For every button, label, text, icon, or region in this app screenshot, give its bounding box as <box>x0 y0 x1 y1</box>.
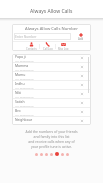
button[interactable]: Delete <box>80 119 84 123</box>
button[interactable]: Neighbour <box>12 117 91 125</box>
staticText: Bro <box>15 108 21 113</box>
button[interactable]: Mamma <box>12 63 91 71</box>
button[interactable]: Msg Log <box>56 42 71 51</box>
staticText: Always Allow Calls <box>30 8 73 15</box>
staticText: Mamu <box>15 72 26 77</box>
button[interactable]: Delete <box>80 56 84 60</box>
staticText: +91 9876543210 <box>15 113 34 116</box>
button[interactable]: Delete <box>80 83 84 87</box>
staticText: Indhu <box>15 81 25 86</box>
staticText: Mamma <box>15 63 29 68</box>
staticText: Contacts <box>26 47 37 51</box>
button[interactable]: Satish <box>12 99 91 107</box>
staticText: Papa ji <box>15 54 26 59</box>
button[interactable]: Delete <box>80 110 84 114</box>
staticText: Enter Number <box>15 35 37 39</box>
staticText: +91 9876543210 <box>15 77 34 80</box>
staticText: +91 9876543210 <box>15 59 34 62</box>
button[interactable]: Contacts <box>23 42 39 51</box>
staticText: +91 9876543210 <box>15 104 34 107</box>
staticText: +91 9876543210 <box>15 122 34 125</box>
staticText: Niki <box>15 90 22 95</box>
staticText: Always Allow Calls Number <box>25 26 78 32</box>
button[interactable]: Mamu <box>12 72 91 80</box>
staticText: +91 9876543210 <box>15 86 34 89</box>
button[interactable]: Delete <box>80 101 84 105</box>
staticText: +91 9876543210 <box>15 68 34 71</box>
staticText: Msg Log <box>58 47 69 51</box>
staticText: Add <box>78 37 84 40</box>
button[interactable]: Delete <box>80 74 84 78</box>
button[interactable]: Bro <box>12 108 91 116</box>
staticText: Neighbour <box>15 117 33 122</box>
staticText: Satish <box>15 99 25 104</box>
staticText: Call Log <box>43 47 53 51</box>
button[interactable]: Delete <box>80 92 84 96</box>
button[interactable]: Add <box>71 33 90 40</box>
button[interactable]: Papa ji <box>12 54 91 62</box>
button[interactable]: Indhu <box>12 81 91 89</box>
button[interactable]: Niki <box>12 90 91 98</box>
button[interactable]: Delete <box>80 65 84 69</box>
staticText: +91 9876543210 <box>15 95 34 98</box>
staticText: Add the numbers of your friends and fami… <box>0 129 103 149</box>
button[interactable]: Call Log <box>40 42 55 51</box>
